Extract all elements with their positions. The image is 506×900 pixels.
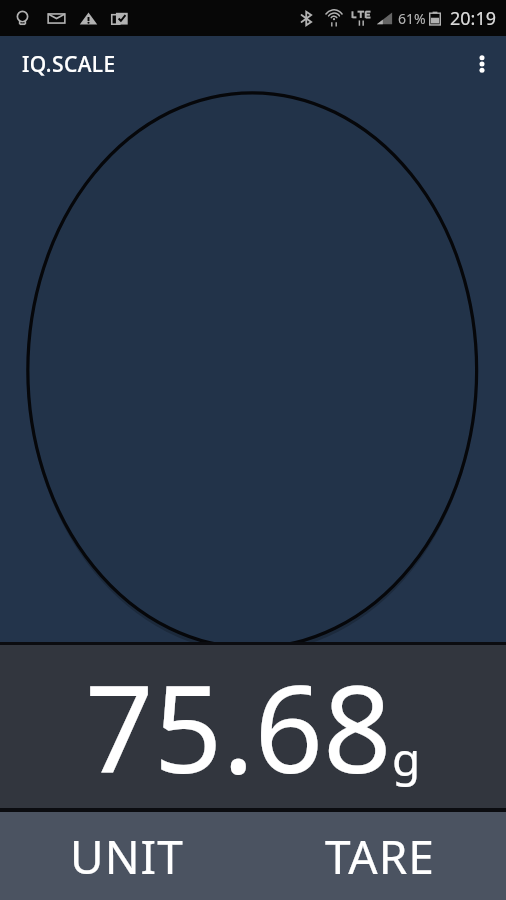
button[interactable]: More options	[458, 40, 506, 88]
staticText: TARE	[325, 825, 435, 888]
button[interactable]: Scale plate	[0, 92, 506, 642]
staticText: IQ.SCALE	[22, 50, 116, 79]
staticText: 61%	[398, 9, 426, 28]
button[interactable]: TARE	[253, 812, 506, 900]
button[interactable]: UNIT	[0, 812, 253, 900]
staticText: UNIT	[70, 825, 184, 888]
staticText: 75.68	[85, 645, 392, 808]
staticText: g	[392, 727, 421, 790]
button[interactable]: Current weight 75.68 grams	[0, 645, 506, 808]
staticText: 20:19	[450, 6, 497, 31]
